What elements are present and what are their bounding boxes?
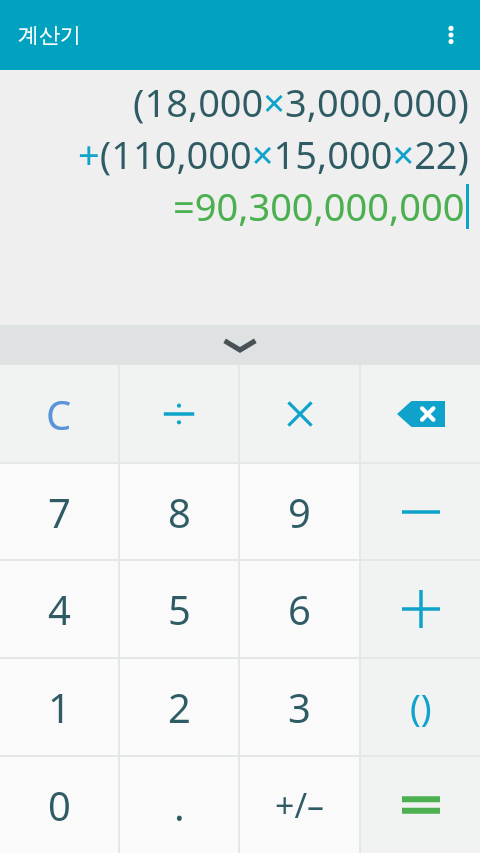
button[interactable]: Multiply [240,365,359,462]
staticText: =90,300,000,000 [173,180,465,232]
staticText: 4 [48,582,71,636]
button[interactable]: 2 [120,659,238,755]
button[interactable]: 0 [0,757,118,853]
button[interactable]: Equals [361,757,480,853]
staticText: 2 [168,680,191,734]
button[interactable]: C [0,365,118,462]
button[interactable]: 5 [120,561,238,657]
staticText: (18,000×3,000,000) [133,76,469,128]
button[interactable]: +/– [240,757,359,853]
staticText: 계산기 [18,22,81,48]
button[interactable]: 4 [0,561,118,657]
button[interactable]: Add [361,561,480,657]
staticText: 7 [48,485,71,539]
staticText: 8 [168,485,191,539]
button[interactable]: Divide [120,365,238,462]
staticText: 5 [168,582,191,636]
staticText: +/– [275,782,325,828]
staticText: +(110,000×15,000×22) [78,128,469,180]
button[interactable]: Backspace [361,365,480,462]
staticText: 6 [288,582,311,636]
staticText: C [46,387,72,441]
button[interactable]: . [120,757,238,853]
button[interactable]: () [361,659,480,755]
staticText: 3 [288,680,311,734]
button[interactable]: 1 [0,659,118,755]
staticText: . [174,778,185,832]
button[interactable]: More options [422,0,480,70]
button[interactable]: Collapse keypad [0,325,480,365]
button[interactable]: 3 [240,659,359,755]
button[interactable]: 8 [120,464,238,559]
staticText: () [410,683,432,732]
button[interactable]: Subtract [361,464,480,559]
button[interactable]: 9 [240,464,359,559]
staticText: 9 [288,485,311,539]
button[interactable]: 7 [0,464,118,559]
staticText: 0 [48,778,71,832]
button[interactable]: 6 [240,561,359,657]
staticText: 1 [48,680,71,734]
